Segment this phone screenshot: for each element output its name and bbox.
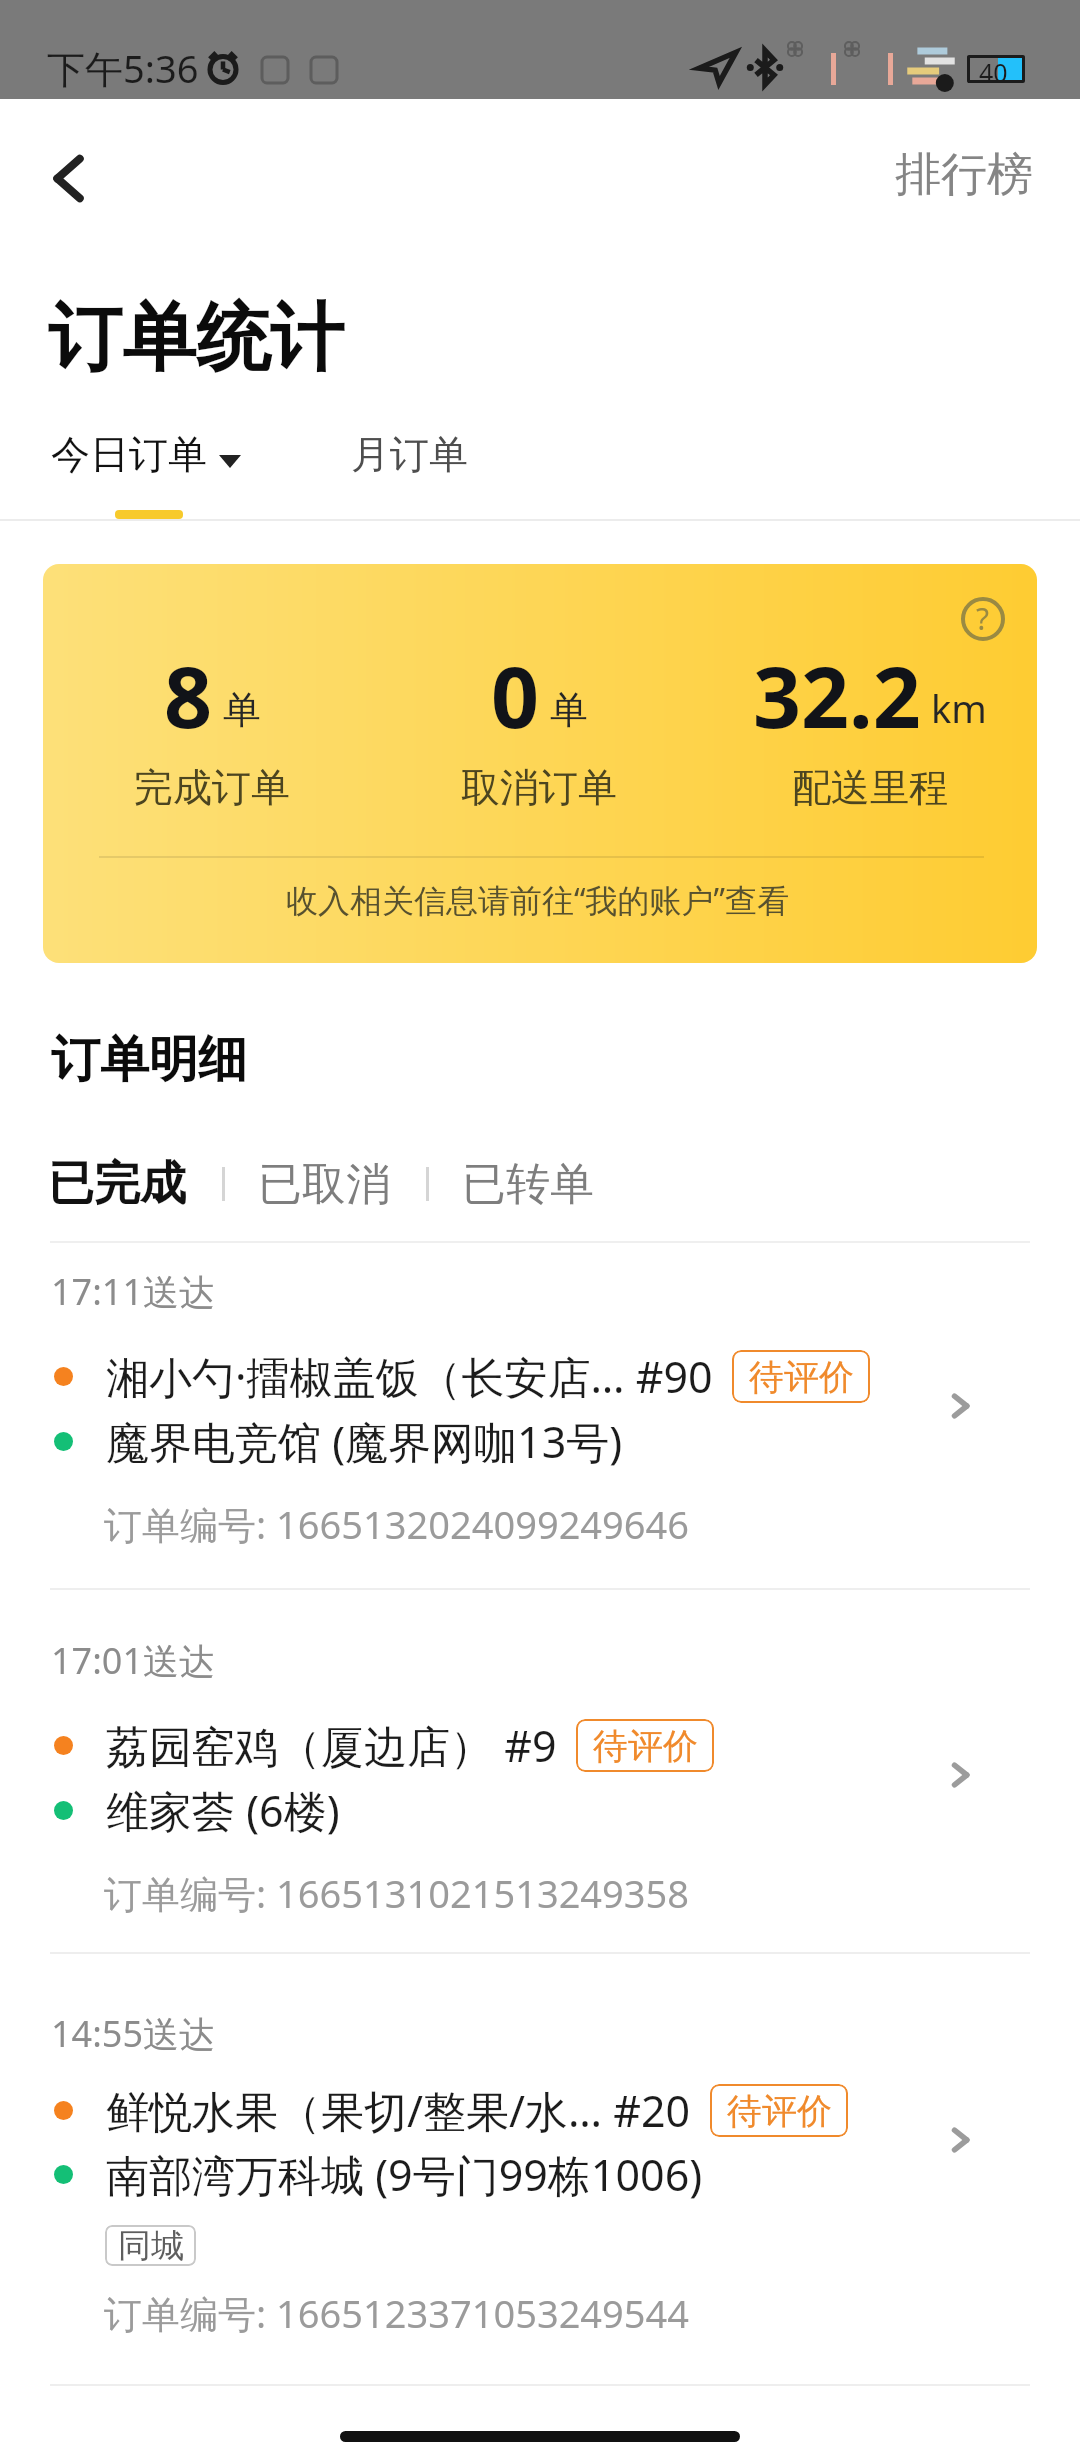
staticText: 排行榜 — [895, 146, 1033, 204]
button[interactable]: 已取消 — [258, 1157, 390, 1212]
staticText: 待评价 — [593, 1724, 698, 1768]
staticText: 维家荟 (6楼) — [106, 1781, 340, 1840]
staticText: 14:55送达 — [51, 2009, 216, 2058]
button[interactable]: 14:55送达 — [0, 1956, 1080, 2386]
staticText: 订单明细 — [51, 1029, 247, 1091]
button[interactable]: Order detail — [925, 2104, 995, 2176]
staticText: 32.2 — [753, 638, 921, 752]
staticText: 订单编号: 1665123371053249544 — [104, 2287, 690, 2339]
staticText: 魔界电竞馆 (魔界网咖13号) — [106, 1412, 623, 1471]
staticText: 完成订单 — [134, 763, 290, 812]
button[interactable]: 今日订单 — [51, 430, 241, 479]
button[interactable]: 已完成 — [48, 1155, 186, 1213]
staticText: 40 — [979, 55, 1008, 83]
staticText: 17:11送达 — [51, 1267, 216, 1316]
button[interactable]: 月订单 — [351, 430, 468, 479]
staticText: 待评价 — [749, 1355, 854, 1399]
button[interactable]: 17:01送达 — [0, 1592, 1080, 1954]
staticText: 配送里程 — [792, 763, 948, 812]
button[interactable]: 17:11送达 — [0, 1243, 1080, 1590]
staticText: 取消订单 — [461, 763, 617, 812]
staticText: 湘小勺·擂椒盖饭（长安店… #90 — [106, 1347, 713, 1406]
staticText: 订单统计 — [48, 292, 344, 385]
button[interactable]: Help — [43, 564, 1037, 963]
staticText: 荔园窑鸡（厦边店） #9 — [106, 1716, 557, 1775]
button[interactable]: Help — [940, 576, 1026, 662]
staticText: 单 — [550, 686, 588, 734]
button[interactable]: Back — [25, 135, 111, 221]
staticText: 订单编号: 1665131021513249358 — [104, 1867, 690, 1919]
staticText: ? — [976, 598, 990, 639]
button[interactable]: Order detail — [925, 1739, 995, 1811]
staticText: 收入相关信息请前往“我的账户”查看 — [286, 878, 789, 922]
button[interactable]: 已转单 — [462, 1157, 594, 1212]
staticText: 鲜悦水果（果切/整果/水… #20 — [106, 2081, 691, 2140]
staticText: 订单编号: 1665132024099249646 — [104, 1498, 690, 1550]
staticText: 今日订单 — [51, 430, 207, 479]
staticText: 南部湾万科城 (9号门99栋1006) — [106, 2145, 703, 2204]
staticText: 同城 — [118, 2225, 184, 2266]
staticText: 0 — [491, 638, 540, 752]
staticText: 待评价 — [727, 2089, 832, 2133]
staticText: 单 — [223, 686, 261, 734]
button[interactable]: Order detail — [925, 1370, 995, 1442]
staticText: 8 — [164, 638, 213, 752]
staticText: km — [931, 682, 987, 734]
button[interactable]: 排行榜 — [855, 140, 1080, 210]
staticText: 17:01送达 — [51, 1636, 216, 1685]
staticText: 下午5:36 — [47, 42, 199, 94]
